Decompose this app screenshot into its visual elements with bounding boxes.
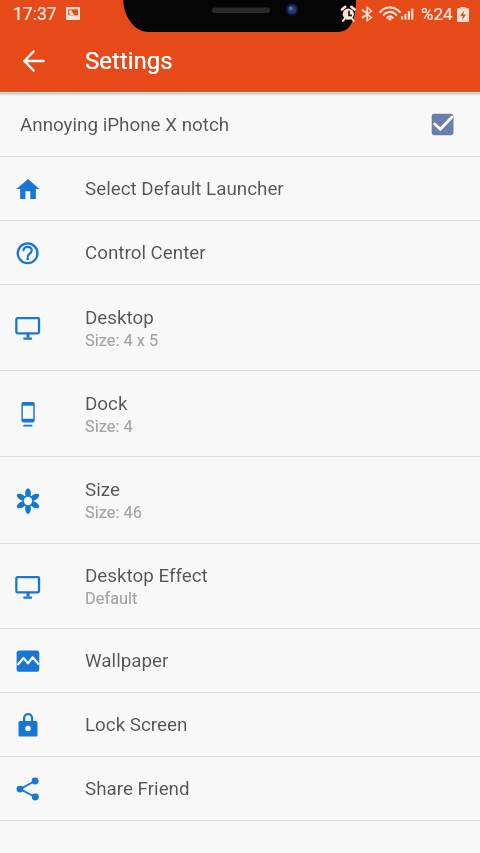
staticText: Size [85,479,120,501]
staticText: Default [85,589,138,608]
staticText: Share Friend [85,778,190,800]
button[interactable]: Lock Screen [0,693,480,757]
staticText: %24 [421,4,453,24]
button[interactable]: Control Center [0,221,480,285]
staticText: Dock [85,393,128,415]
staticText: Desktop Effect [85,565,208,587]
button[interactable]: Size [0,457,480,544]
button[interactable]: Share Friend [0,757,480,821]
staticText: Settings [85,47,173,75]
staticText: Annoying iPhone X notch [20,114,230,136]
button[interactable]: Annoying iPhone X notch [0,93,480,157]
staticText: Size: 4 x 5 [85,331,159,350]
button[interactable]: Wallpaper [0,629,480,693]
button[interactable]: Dock [0,371,480,457]
staticText: 17:37 [13,4,57,25]
button[interactable]: Desktop [0,285,480,371]
staticText: Control Center [85,242,206,264]
staticText: Desktop [85,307,154,329]
button[interactable]: Select Default Launcher [0,157,480,221]
staticText: Size: 4 [85,417,133,436]
staticText: Select Default Launcher [85,178,284,200]
button[interactable]: Back [0,33,68,92]
staticText: Lock Screen [85,714,188,736]
staticText: Size: 46 [85,503,142,522]
staticText: Wallpaper [85,650,169,672]
button[interactable]: Desktop Effect [0,544,480,629]
